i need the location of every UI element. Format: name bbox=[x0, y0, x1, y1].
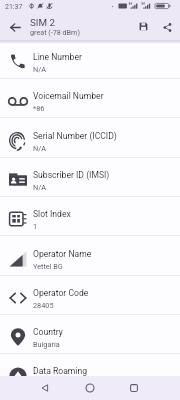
staticText: Country bbox=[33, 327, 63, 337]
staticText: N/A bbox=[33, 65, 46, 74]
staticText: Line Number bbox=[33, 52, 82, 62]
button[interactable]: Back bbox=[33, 376, 57, 400]
staticText: N/A bbox=[33, 144, 46, 153]
staticText: Yettel BG bbox=[33, 262, 63, 271]
button[interactable]: Country bbox=[0, 315, 180, 354]
button[interactable]: Operator Name bbox=[0, 237, 180, 276]
button[interactable]: Share bbox=[156, 16, 178, 38]
button[interactable]: Back bbox=[4, 16, 26, 38]
staticText: N/A bbox=[33, 183, 46, 192]
button[interactable]: Voicemail Number bbox=[0, 79, 180, 118]
staticText: Data Roaming bbox=[33, 366, 88, 376]
staticText: Operator Name bbox=[33, 249, 92, 259]
staticText: *86 bbox=[33, 104, 45, 113]
staticText: 28405 bbox=[33, 301, 54, 310]
staticText: Operator Code bbox=[33, 288, 89, 298]
staticText: Slot Index bbox=[33, 209, 71, 219]
button[interactable]: Slot Index bbox=[0, 197, 180, 236]
button[interactable]: Subscriber ID (IMSI) bbox=[0, 158, 180, 197]
staticText: Serial Number (ICCID) bbox=[33, 131, 117, 141]
staticText: SIM 2 bbox=[30, 17, 55, 28]
staticText: great (-78 dBm) bbox=[30, 28, 80, 36]
button[interactable]: Home bbox=[78, 376, 102, 400]
staticText: 21:37 bbox=[5, 3, 23, 11]
button[interactable]: Operator Code bbox=[0, 276, 180, 315]
staticText: 1 bbox=[33, 222, 38, 231]
button[interactable]: Serial Number (ICCID) bbox=[0, 119, 180, 158]
button[interactable]: Recents bbox=[122, 376, 146, 400]
button[interactable]: Line Number bbox=[0, 43, 180, 79]
staticText: Voicemail Number bbox=[33, 91, 104, 101]
button[interactable]: Save bbox=[132, 15, 154, 37]
button[interactable]: Data Roaming bbox=[0, 354, 180, 376]
staticText: Bulgaria bbox=[33, 340, 60, 349]
staticText: Subscriber ID (IMSI) bbox=[33, 170, 110, 180]
